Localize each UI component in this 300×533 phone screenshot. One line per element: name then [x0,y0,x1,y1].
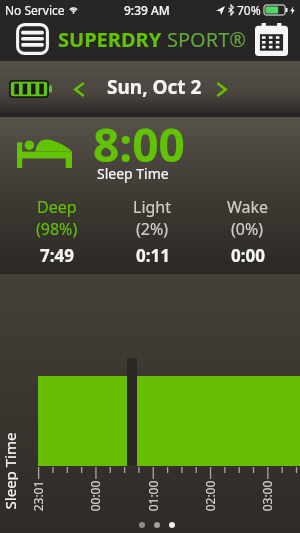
staticText: (0%) [231,218,264,240]
button[interactable]: Wake [200,196,295,267]
staticText: Sun, Oct 2 [107,74,202,100]
staticText: 02:00 [202,480,218,512]
staticText: 7:49 [40,244,74,267]
button[interactable]: Previous day [68,76,90,102]
button[interactable]: Next day [210,76,232,102]
staticText: 01:00 [145,480,161,512]
staticText: No Service [5,2,65,18]
staticText: (2%) [136,218,169,240]
staticText: 03:00 [259,480,275,512]
staticText: 00:00 [87,480,103,512]
button[interactable]: Light [105,196,200,267]
staticText: 23:01 [30,480,46,512]
staticText: 8:00 [93,113,185,176]
staticText: SPORT® [167,26,246,53]
staticText: Light [133,196,172,218]
staticText: Wake [227,196,269,218]
button[interactable]: Deep [9,196,105,267]
button[interactable]: Calendar [253,21,289,57]
staticText: SUPERDRY [58,26,162,53]
button[interactable]: Menu [14,21,50,57]
staticText: 9:39 AM [124,2,170,18]
staticText: Deep [37,196,77,218]
staticText: 0:00 [231,244,265,267]
staticText: 0:11 [136,244,170,267]
staticText: Sleep Time [97,164,169,183]
staticText: 70% [237,2,261,18]
staticText: Sleep Time [0,428,18,514]
staticText: (98%) [36,218,78,240]
